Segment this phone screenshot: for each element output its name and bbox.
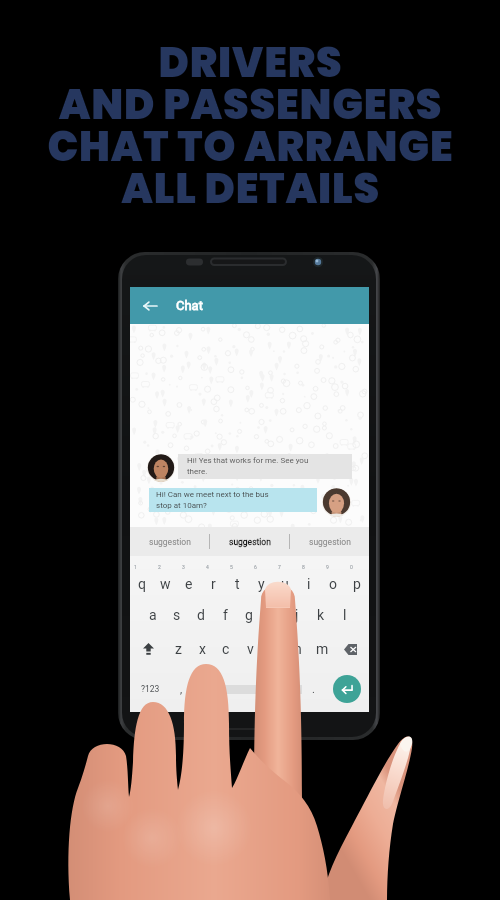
button[interactable]: suggestion xyxy=(290,527,369,556)
staticText: 4 xyxy=(206,564,209,570)
staticText: c xyxy=(222,641,230,657)
button[interactable]: Back xyxy=(138,294,162,318)
staticText: DRIVERS AND PASSENGERS CHAT TO ARRANGE A… xyxy=(47,34,454,217)
staticText: z xyxy=(175,641,182,657)
staticText: d xyxy=(197,607,205,623)
button[interactable]: 0 xyxy=(345,566,369,596)
staticText: f xyxy=(223,607,228,623)
staticText: 2 xyxy=(158,564,161,570)
button[interactable]: Back xyxy=(130,287,369,324)
button[interactable]: 3 xyxy=(177,566,201,596)
staticText: ?123 xyxy=(141,684,160,694)
button[interactable]: , xyxy=(170,666,192,712)
button[interactable]: h xyxy=(261,600,285,630)
button[interactable]: Send xyxy=(333,675,361,703)
staticText: a xyxy=(149,607,157,623)
staticText: w xyxy=(160,576,171,592)
button[interactable]: 6 xyxy=(249,566,273,596)
button[interactable]: x xyxy=(190,634,214,664)
button[interactable]: 5 xyxy=(225,566,249,596)
button[interactable]: suggestion xyxy=(210,527,289,556)
button[interactable]: l xyxy=(333,600,357,630)
staticText: 5 xyxy=(230,564,233,570)
staticText: k xyxy=(317,607,325,623)
staticText: p xyxy=(353,576,361,592)
button[interactable]: g xyxy=(237,600,261,630)
button[interactable]: d xyxy=(189,600,213,630)
staticText: suggestion xyxy=(149,537,191,547)
button[interactable]: v xyxy=(238,634,262,664)
button[interactable]: ?123 xyxy=(130,666,170,712)
button[interactable]: 7 xyxy=(273,566,297,596)
button[interactable]: m xyxy=(310,634,334,664)
staticText: t xyxy=(235,576,240,592)
staticText: 7 xyxy=(278,564,281,570)
staticText: g xyxy=(245,607,253,623)
button[interactable]: 1 xyxy=(130,566,153,596)
button[interactable]: f xyxy=(213,600,237,630)
button[interactable]: b xyxy=(262,634,286,664)
staticText: q xyxy=(138,576,146,592)
staticText: e xyxy=(185,576,193,592)
button[interactable]: . xyxy=(302,666,324,712)
staticText: . xyxy=(312,683,315,696)
staticText: j xyxy=(295,607,299,623)
staticText: suggestion xyxy=(309,537,351,547)
staticText: 6 xyxy=(254,564,257,570)
staticText: x xyxy=(199,641,206,657)
button[interactable]: a xyxy=(141,600,165,630)
staticText: Hi! Can we meet next to the bus stop at … xyxy=(156,490,269,510)
staticText: b xyxy=(270,641,278,657)
button[interactable]: 8 xyxy=(297,566,321,596)
button[interactable]: Backspace xyxy=(334,634,369,664)
button[interactable]: 2 xyxy=(153,566,177,596)
button[interactable]: 4 xyxy=(201,566,225,596)
staticText: 8 xyxy=(302,564,305,570)
button[interactable]: 9 xyxy=(321,566,345,596)
staticText: i xyxy=(307,576,311,592)
button[interactable]: j xyxy=(285,600,309,630)
staticText: 1 xyxy=(134,564,137,570)
staticText: Hi! Yes that works for me. See you there… xyxy=(187,456,309,476)
staticText: , xyxy=(180,683,183,696)
button[interactable]: n xyxy=(286,634,310,664)
staticText: Chat xyxy=(176,298,203,313)
staticText: m xyxy=(316,641,329,657)
staticText: 0 xyxy=(350,564,353,570)
staticText: s xyxy=(173,607,181,623)
button[interactable]: Shift xyxy=(130,634,166,664)
button[interactable]: suggestion xyxy=(130,527,209,556)
staticText: y xyxy=(258,576,265,592)
staticText: n xyxy=(294,641,302,657)
staticText: o xyxy=(329,576,337,592)
staticText: suggestion xyxy=(229,537,271,547)
staticText: l xyxy=(343,607,347,623)
button[interactable]: k xyxy=(309,600,333,630)
button[interactable]: s xyxy=(165,600,189,630)
staticText: 3 xyxy=(182,564,185,570)
button[interactable]: c xyxy=(214,634,238,664)
staticText: u xyxy=(281,576,289,592)
staticText: h xyxy=(269,607,277,623)
button[interactable]: Space xyxy=(192,676,302,702)
staticText: 9 xyxy=(326,564,329,570)
staticText: v xyxy=(247,641,254,657)
staticText: r xyxy=(211,576,216,592)
button[interactable]: z xyxy=(166,634,190,664)
